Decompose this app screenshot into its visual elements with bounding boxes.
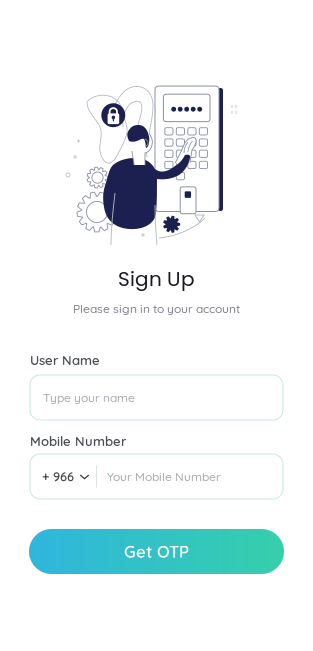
staticText: Mobile Number — [30, 433, 126, 449]
staticText: Get OTP — [124, 541, 189, 562]
staticText: Type your name — [43, 390, 135, 405]
button[interactable]: Get OTP — [29, 529, 284, 574]
staticText: + 966 — [42, 469, 74, 484]
staticText: Your Mobile Number — [107, 469, 221, 484]
staticText: User Name — [30, 352, 100, 368]
staticText: Sign Up — [118, 265, 195, 293]
staticText: Please sign in to your account — [73, 301, 240, 316]
